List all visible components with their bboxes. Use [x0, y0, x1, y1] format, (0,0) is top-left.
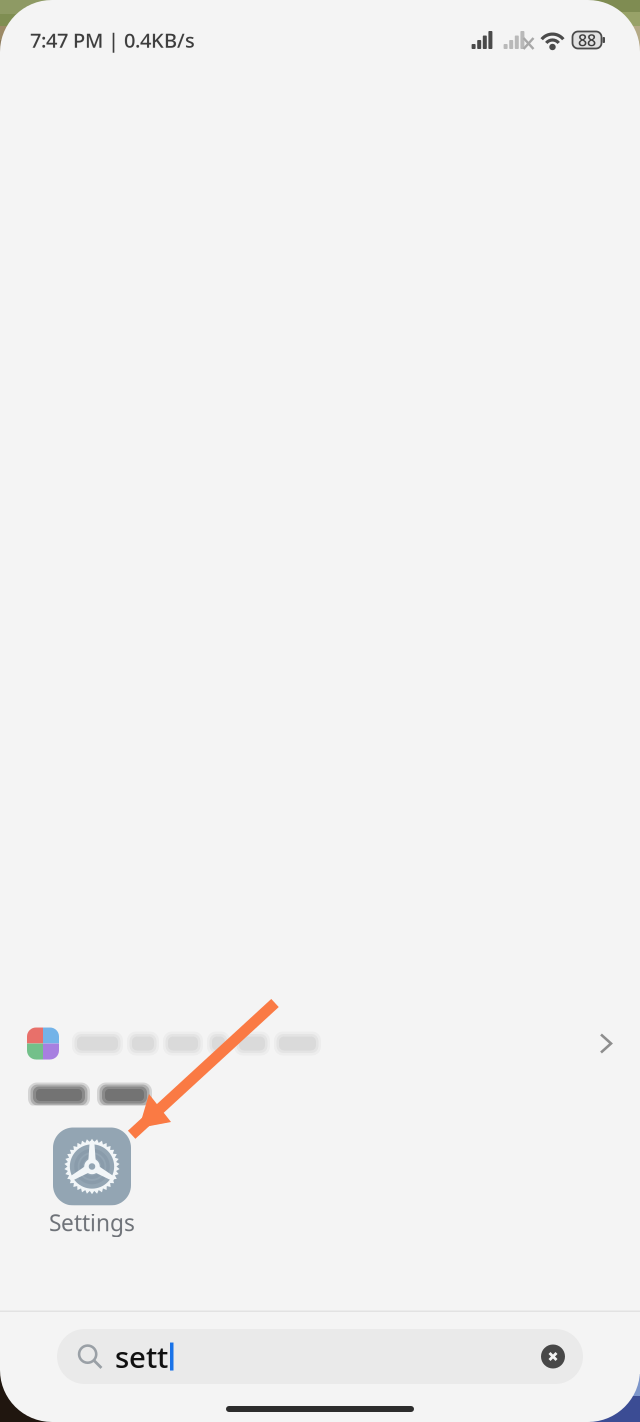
button[interactable]: Clear search: [531, 1334, 575, 1378]
staticText: 88: [578, 29, 596, 51]
button[interactable]: sett: [57, 1329, 583, 1384]
staticText: Settings: [49, 1207, 135, 1237]
button[interactable]: [0, 1025, 640, 1061]
staticText: 7:47 PM | 0.4KB/s: [30, 27, 195, 53]
button[interactable]: Settings: [28, 1127, 156, 1237]
staticText: sett: [115, 1337, 168, 1376]
